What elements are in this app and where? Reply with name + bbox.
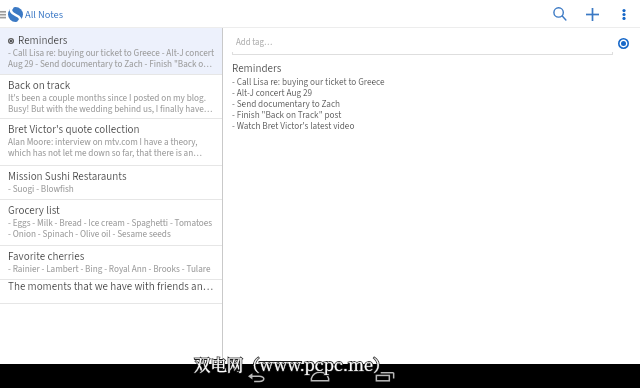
button[interactable]: Mission Sushi Restaraunts [0, 166, 222, 200]
button[interactable]: Home [311, 372, 329, 381]
staticText: Mission Sushi Restaraunts [8, 169, 127, 185]
staticText: Alan Moore: interview on mtv.com I have … [8, 136, 202, 160]
button[interactable]: Pin note [615, 35, 632, 52]
button[interactable]: Reminders [0, 28, 222, 75]
button[interactable]: Back [248, 372, 265, 382]
staticText: 双电网（www.pcpc.me） [194, 352, 390, 376]
staticText: Grocery list [8, 203, 60, 219]
staticText: 双电网（www.pcpc.me） [194, 352, 390, 376]
button[interactable]: More options [608, 0, 640, 28]
staticText: - Suogi - Blowfish [8, 183, 74, 196]
staticText: All Notes [25, 7, 64, 22]
staticText: Favorite cherries [8, 249, 85, 265]
staticText: Reminders [18, 33, 68, 49]
staticText: Add tag… [236, 36, 273, 49]
staticText: - Eggs - Milk - Bread - Ice cream - Spag… [8, 217, 213, 241]
button[interactable]: Open navigation drawer [0, 0, 7, 28]
button[interactable]: Back on track [0, 75, 222, 119]
button[interactable]: Favorite cherries [0, 246, 222, 280]
staticText: Reminders [232, 61, 282, 77]
staticText: - Call Lisa re: buying our ticket to Gre… [8, 47, 215, 71]
button[interactable]: Search [544, 0, 576, 28]
staticText: The moments that we have with friends an… [8, 279, 214, 295]
staticText: It's been a couple months since I posted… [8, 92, 213, 116]
button[interactable]: Grocery list [0, 200, 222, 246]
button[interactable]: Recent apps [376, 372, 394, 381]
button[interactable]: Bret Victor's quote collection [0, 119, 222, 166]
staticText: - Call Lisa re: buying our ticket to Gre… [232, 76, 385, 132]
button[interactable]: The moments that we have with friends an… [0, 280, 222, 304]
staticText: Bret Victor's quote collection [8, 122, 140, 138]
staticText: - Rainier - Lambert - Bing - Royal Ann -… [8, 263, 211, 276]
button[interactable]: New note [576, 0, 608, 28]
staticText: Back on track [8, 78, 71, 94]
